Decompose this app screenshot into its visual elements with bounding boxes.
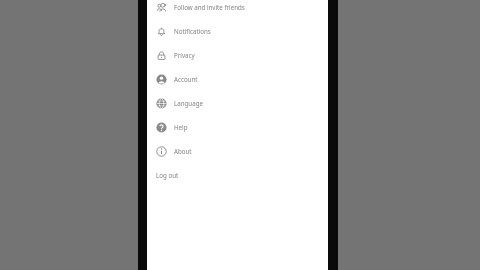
button[interactable]: Log out [147,163,328,187]
staticText: Follow and invite friends [174,3,245,11]
button[interactable]: About [147,139,328,163]
button[interactable]: Follow and invite friends [147,0,328,19]
button[interactable]: Help [147,115,328,139]
staticText: Help [174,123,188,131]
staticText: Account [174,75,198,83]
staticText: Language [174,99,203,107]
staticText: Notifications [174,27,211,35]
staticText: About [174,147,192,155]
button[interactable]: Language [147,91,328,115]
staticText: Privacy [174,51,195,59]
staticText: Log out [156,171,179,179]
button[interactable]: Account [147,67,328,91]
button[interactable]: Notifications [147,19,328,43]
button[interactable]: Privacy [147,43,328,67]
